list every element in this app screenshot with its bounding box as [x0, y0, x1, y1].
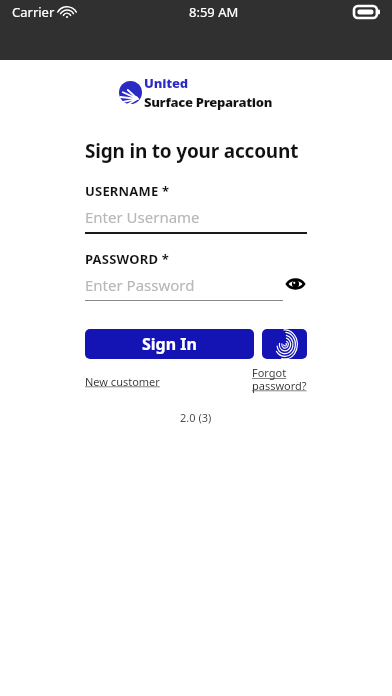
- staticText: Forgot password?: [252, 365, 307, 393]
- staticText: New customer: [85, 374, 160, 389]
- staticText: USERNAME *: [85, 182, 170, 200]
- staticText: Enter Username: [85, 207, 200, 227]
- button[interactable]: Enter Password: [85, 275, 283, 301]
- button[interactable]: Enter Username: [85, 207, 307, 234]
- staticText: 8:59 AM: [189, 3, 239, 21]
- staticText: Carrier: [12, 3, 55, 21]
- button[interactable]: Sign In: [85, 329, 254, 359]
- staticText: Surface Preparation: [144, 93, 273, 111]
- staticText: Sign in to your account: [85, 138, 299, 164]
- button[interactable]: Sign in with fingerprint: [262, 329, 307, 359]
- staticText: Sign In: [142, 333, 197, 355]
- staticText: United: [144, 74, 188, 92]
- button[interactable]: New customer: [85, 374, 160, 389]
- staticText: Enter Password: [85, 275, 195, 295]
- staticText: PASSWORD *: [85, 250, 169, 268]
- button[interactable]: Show password: [283, 272, 307, 296]
- button[interactable]: Forgot password?: [252, 365, 307, 393]
- staticText: 2.0 (3): [180, 410, 212, 425]
